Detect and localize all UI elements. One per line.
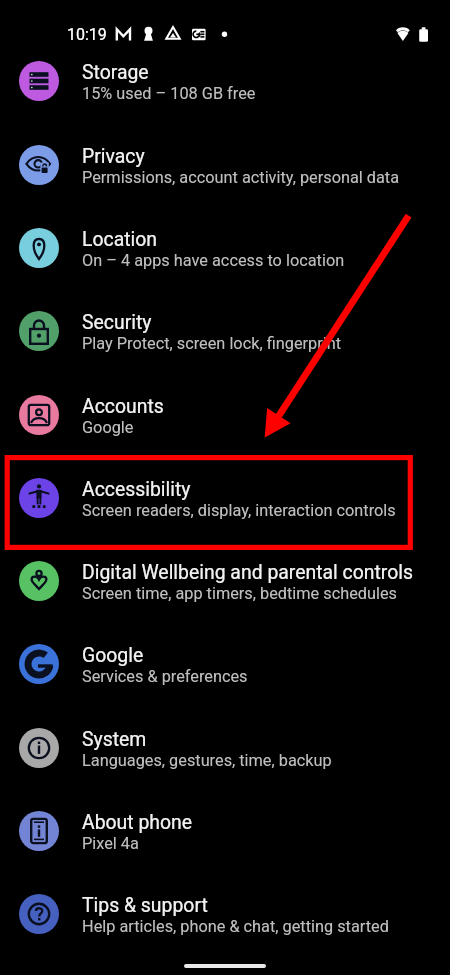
staticText: Screen readers, display, interaction con… xyxy=(82,501,396,520)
staticText: Help articles, phone & chat, getting sta… xyxy=(82,917,389,936)
staticText: Languages, gestures, time, backup xyxy=(82,751,332,770)
button[interactable]: Digital Wellbeing and parental controls xyxy=(0,539,450,622)
staticText: On – 4 apps have access to location xyxy=(82,251,345,270)
staticText: Storage xyxy=(82,61,149,84)
staticText: Privacy xyxy=(82,145,145,168)
staticText: Permissions, account activity, personal … xyxy=(82,168,400,187)
staticText: Tips & support xyxy=(82,894,208,917)
staticText: Services & preferences xyxy=(82,667,248,686)
staticText: Location xyxy=(82,228,158,251)
staticText: 10:19 xyxy=(67,25,107,44)
staticText: Accessibility xyxy=(82,478,191,501)
button[interactable]: About phone xyxy=(0,789,450,872)
button[interactable]: Accessibility xyxy=(0,456,450,539)
button[interactable]: Security xyxy=(0,289,450,372)
staticText: Screen time, app timers, bedtime schedul… xyxy=(82,584,398,603)
button[interactable]: Tips & support xyxy=(0,872,450,955)
button[interactable]: Storage xyxy=(0,39,450,122)
staticText: System xyxy=(82,728,147,751)
button[interactable]: Accounts xyxy=(0,373,450,456)
staticText: Accounts xyxy=(82,395,164,418)
staticText: Pixel 4a xyxy=(82,834,139,853)
button[interactable]: Location xyxy=(0,206,450,289)
staticText: Play Protect, screen lock, fingerprint xyxy=(82,334,342,353)
staticText: Digital Wellbeing and parental controls xyxy=(82,561,414,584)
staticText: Google xyxy=(82,418,134,437)
staticText: Google xyxy=(82,644,144,667)
button[interactable]: Privacy xyxy=(0,123,450,206)
button[interactable]: System xyxy=(0,706,450,789)
staticText: Security xyxy=(82,311,152,334)
staticText: About phone xyxy=(82,811,193,834)
staticText: 15% used – 108 GB free xyxy=(82,84,256,103)
button[interactable]: Google xyxy=(0,622,450,705)
